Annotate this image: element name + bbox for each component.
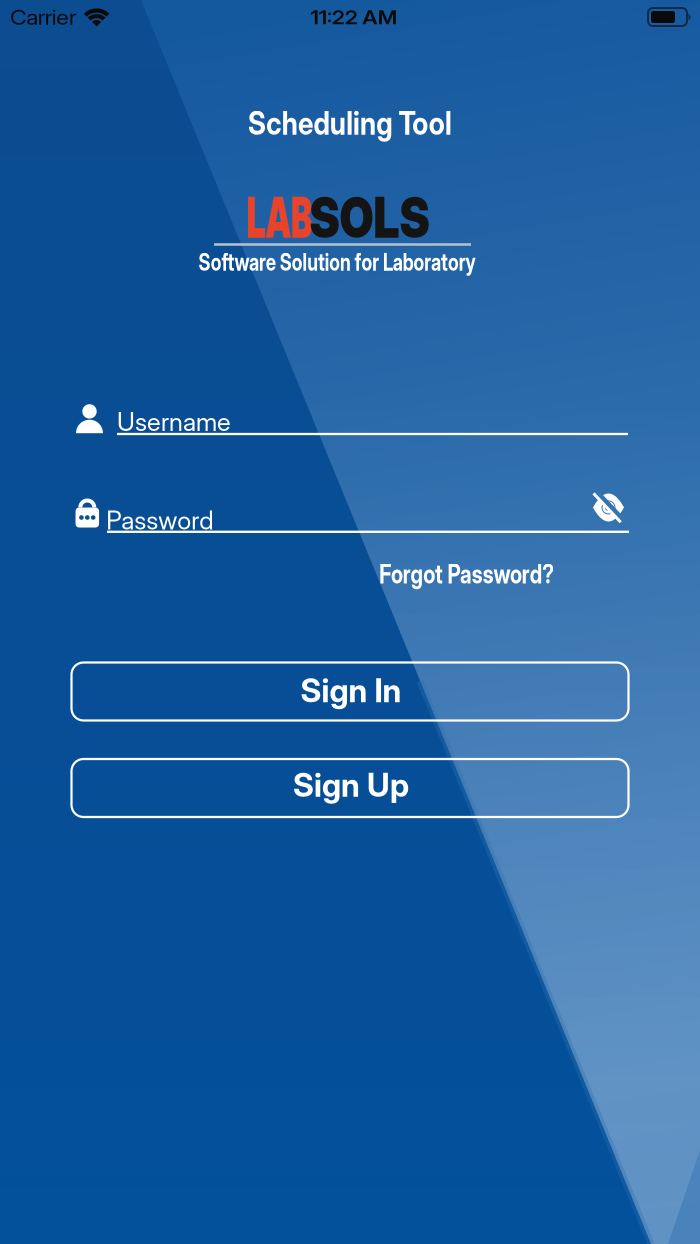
staticText: Username [117, 407, 231, 437]
staticText: Carrier [14, 6, 71, 29]
staticText: LAB [224, 184, 335, 251]
button[interactable]: Password [76, 494, 629, 536]
staticText: SOLS [294, 184, 444, 251]
staticText: Scheduling Tool [231, 104, 468, 142]
staticText: Sign In [300, 672, 401, 709]
button[interactable]: Username [76, 402, 628, 438]
button[interactable]: Forgot Password? [355, 558, 578, 590]
button[interactable]: Sign Up [71, 759, 628, 817]
staticText: Password [106, 505, 213, 535]
staticText: Software Solution for Laboratory [156, 248, 518, 276]
button[interactable]: Show password [590, 490, 626, 524]
button[interactable]: Sign In [71, 662, 628, 720]
staticText: Forgot Password? [355, 558, 578, 590]
staticText: 11:22 AM [317, 6, 390, 28]
staticText: Sign Up [293, 766, 409, 804]
